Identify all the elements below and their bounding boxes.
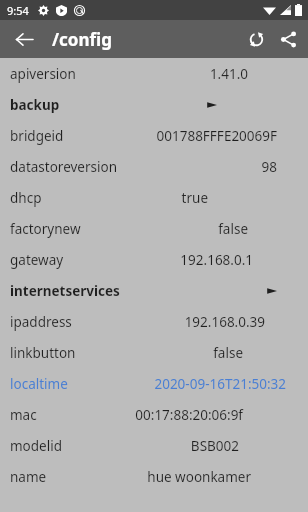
button[interactable]: bridgeid (0, 120, 308, 151)
button[interactable]: Back (8, 23, 40, 55)
button[interactable]: localtime (0, 368, 308, 399)
button[interactable]: gateway (0, 244, 308, 275)
button[interactable]: internetservices (0, 275, 308, 306)
staticText: linkbutton (10, 344, 76, 362)
staticText: backup (10, 96, 60, 114)
staticText: factorynew (10, 220, 81, 238)
button[interactable]: datastoreversion (0, 151, 308, 182)
button[interactable]: Refresh (240, 23, 272, 55)
staticText: ipaddress (10, 313, 72, 331)
staticText: datastoreversion (10, 158, 117, 176)
button[interactable]: ipaddress (0, 306, 308, 337)
button[interactable]: backup (0, 89, 308, 120)
staticText: gateway (10, 251, 64, 269)
staticText: 001788FFFE20069F (156, 127, 277, 145)
staticText: mac (10, 406, 37, 424)
button[interactable]: linkbutton (0, 337, 308, 368)
staticText: 00:17:88:20:06:9f (135, 406, 243, 424)
button[interactable]: Share (272, 23, 304, 55)
staticText: bridgeid (10, 127, 64, 145)
button[interactable]: apiversion (0, 58, 308, 89)
staticText: modelid (10, 437, 62, 455)
staticText: 2020-09-16T21:50:32 (154, 375, 286, 393)
staticText: apiversion (10, 65, 76, 83)
staticText: BSB002 (190, 437, 239, 455)
staticText: false (213, 344, 243, 362)
button[interactable]: name (0, 461, 308, 492)
staticText: /config (52, 28, 112, 51)
staticText: dhcp (10, 189, 42, 207)
staticText: name (10, 468, 47, 486)
button[interactable]: modelid (0, 430, 308, 461)
staticText: localtime (10, 375, 68, 393)
staticText: 9:54 (7, 3, 29, 18)
staticText: true (181, 189, 208, 207)
staticText: 192.168.0.1 (180, 251, 253, 269)
staticText: internetservices (10, 282, 120, 300)
staticText: hue woonkamer (147, 468, 251, 486)
staticText: 192.168.0.39 (184, 313, 265, 331)
button[interactable]: mac (0, 399, 308, 430)
button[interactable]: dhcp (0, 182, 308, 213)
staticText: false (218, 220, 248, 238)
button[interactable]: factorynew (0, 213, 308, 244)
staticText: 98 (261, 158, 277, 176)
staticText: 1.41.0 (209, 65, 248, 83)
